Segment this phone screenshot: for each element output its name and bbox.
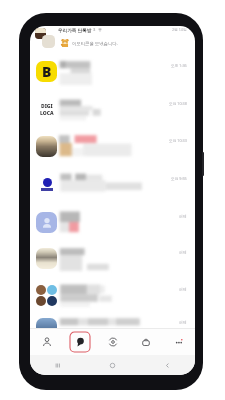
button[interactable]: 어제: [30, 318, 195, 351]
button[interactable]: Shopping: [129, 329, 162, 355]
staticText: 어제: [179, 287, 187, 292]
button[interactable]: Recents: [30, 355, 85, 375]
staticText: DIGI: [41, 103, 53, 110]
staticText: 이모티콘을 보냈습니다.: [72, 40, 118, 46]
staticText: 어제: [179, 320, 187, 325]
button[interactable]: Friends: [30, 329, 63, 355]
button[interactable]: 어제: [30, 212, 195, 245]
button[interactable]: 어제: [30, 285, 195, 318]
staticText: 오전 10:38: [169, 101, 187, 106]
staticText: 어제: [179, 250, 187, 255]
staticText: LOCA: [40, 110, 54, 117]
staticText: 오전 9:55: [171, 176, 187, 181]
button[interactable]: Home: [85, 355, 140, 375]
staticText: 어제: [179, 214, 187, 219]
button[interactable]: 오전 10:33: [30, 136, 195, 169]
button[interactable]: 어제: [30, 248, 195, 281]
button[interactable]: 우리가족 단톡방: [30, 26, 195, 59]
staticText: 2월 14일: [172, 27, 187, 32]
staticText: 3: [93, 27, 96, 33]
button[interactable]: Chats: [63, 329, 96, 355]
button[interactable]: Open chat: [96, 329, 129, 355]
staticText: 오후 1:36: [171, 63, 187, 68]
button[interactable]: 오전 9:55: [30, 174, 195, 207]
button[interactable]: DIGI: [30, 99, 195, 132]
staticText: 우리가족 단톡방: [58, 27, 92, 33]
button[interactable]: B: [30, 61, 195, 94]
button[interactable]: More: [162, 329, 195, 355]
button[interactable]: Back: [140, 355, 195, 375]
staticText: 오전 10:33: [169, 138, 187, 143]
staticText: B: [42, 62, 52, 81]
